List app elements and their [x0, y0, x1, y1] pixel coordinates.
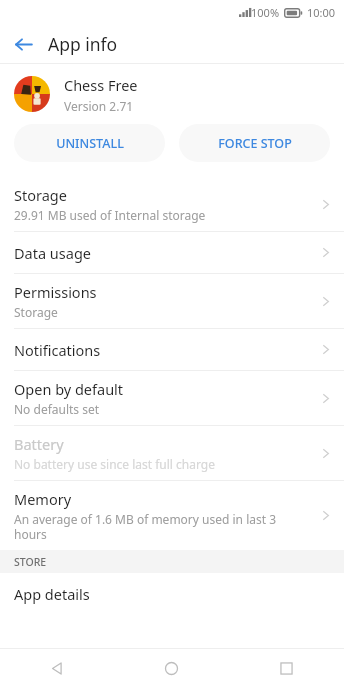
- button[interactable]: Data usage: [0, 232, 344, 273]
- button[interactable]: Notifications: [0, 329, 344, 370]
- button[interactable]: UNINSTALL: [14, 124, 165, 162]
- button[interactable]: Back: [0, 649, 114, 688]
- staticText: Battery: [14, 434, 64, 454]
- button[interactable]: Memory: [0, 481, 344, 550]
- button[interactable]: Storage: [0, 177, 344, 231]
- staticText: Storage: [14, 185, 67, 205]
- staticText: UNINSTALL: [56, 135, 124, 152]
- button[interactable]: Home: [114, 649, 229, 688]
- staticText: App details: [14, 584, 90, 604]
- staticText: 29.91 MB used of Internal storage: [14, 207, 206, 223]
- staticText: STORE: [14, 555, 47, 569]
- staticText: Memory: [14, 489, 72, 509]
- staticText: App info: [48, 32, 118, 56]
- staticText: 10:00: [307, 5, 336, 20]
- staticText: Chess Free: [64, 75, 138, 95]
- button[interactable]: Permissions: [0, 274, 344, 328]
- staticText: Storage: [14, 304, 58, 320]
- staticText: FORCE STOP: [218, 135, 292, 152]
- staticText: No defaults set: [14, 401, 100, 417]
- staticText: 100%: [251, 5, 280, 20]
- button[interactable]: Navigate up: [7, 28, 39, 60]
- staticText: Version 2.71: [64, 98, 134, 114]
- button[interactable]: Battery: [0, 426, 344, 480]
- staticText: Permissions: [14, 282, 97, 302]
- staticText: Data usage: [14, 243, 91, 263]
- staticText: Open by default: [14, 379, 124, 399]
- button[interactable]: Open by default: [0, 371, 344, 425]
- button[interactable]: FORCE STOP: [179, 124, 330, 162]
- button[interactable]: App details: [0, 573, 344, 614]
- staticText: No battery use since last full charge: [14, 456, 215, 472]
- staticText: Notifications: [14, 340, 101, 360]
- button[interactable]: Recent apps: [229, 649, 344, 688]
- staticText: An average of 1.6 MB of memory used in l…: [14, 511, 311, 542]
